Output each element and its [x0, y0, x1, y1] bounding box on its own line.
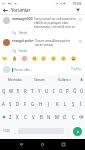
- button[interactable]: V: [29, 110, 37, 123]
- button[interactable]: F: [21, 97, 29, 110]
- button[interactable]: sparkle: [21, 55, 27, 61]
- button[interactable]: Back: [2, 7, 9, 14]
- staticText: A: [2, 101, 5, 107]
- staticText: X: [16, 114, 19, 120]
- button[interactable]: namazgiri000: [0, 15, 85, 35]
- button[interactable]: Like: [78, 39, 83, 44]
- button[interactable]: A: [0, 97, 7, 110]
- staticText: K: [56, 101, 59, 107]
- button[interactable]: M: [53, 110, 61, 123]
- button[interactable]: Ö: [61, 110, 69, 123]
- staticText: Ü: [80, 88, 84, 94]
- staticText: F: [24, 101, 27, 107]
- staticText: G: [31, 101, 35, 107]
- staticText: R: [24, 88, 27, 94]
- button[interactable]: Ş: [69, 97, 77, 110]
- staticText: Z: [9, 114, 12, 120]
- staticText: U: [45, 88, 49, 94]
- button[interactable]: X: [14, 110, 21, 123]
- button[interactable]: Share: [75, 7, 81, 13]
- button[interactable]: Home: [38, 140, 47, 149]
- button[interactable]: surprised: [50, 55, 56, 61]
- staticText: J: [48, 101, 50, 107]
- button[interactable]: B: [37, 110, 45, 123]
- button[interactable]: L: [61, 97, 69, 110]
- button[interactable]: ensegul.ar.tbn: [0, 35, 85, 53]
- staticText: namazgiri000: [12, 17, 33, 21]
- button[interactable]: Ü: [78, 84, 85, 97]
- staticText: ensegul.ar.tbn: [12, 39, 34, 43]
- staticText: Tutum ama Almanya'nın secim mesaj: [35, 39, 77, 47]
- button[interactable]: R: [22, 84, 29, 97]
- staticText: 19:08: [72, 1, 82, 6]
- staticText: L: [64, 101, 67, 107]
- staticText: I: [53, 88, 55, 94]
- staticText: M: [55, 114, 59, 120]
- button[interactable]: ,: [12, 123, 18, 139]
- button[interactable]: Q: [0, 84, 8, 97]
- button[interactable]: Back: [17, 140, 26, 149]
- staticText: Yorum ekle...: [14, 68, 33, 72]
- button[interactable]: S: [7, 97, 14, 110]
- button[interactable]: Like: [78, 17, 83, 22]
- staticText: T: [31, 88, 34, 94]
- staticText: V: [32, 114, 35, 120]
- button[interactable]: W: [8, 84, 15, 97]
- staticText: 2 g Yanıtla: [12, 31, 28, 35]
- button[interactable]: O: [57, 84, 64, 97]
- button[interactable]: E: [15, 84, 22, 97]
- button[interactable]: ?123: [0, 123, 12, 139]
- button[interactable]: Backspace: [77, 110, 85, 123]
- staticText: Y: [38, 88, 41, 94]
- button[interactable]: crying: [60, 55, 66, 61]
- staticText: N: [47, 114, 51, 120]
- staticText: Ç: [72, 114, 75, 120]
- staticText: 2 g Yanıtla: [12, 49, 28, 53]
- staticText: Paylaş: [71, 67, 81, 71]
- button[interactable]: Paylaş: [70, 67, 82, 71]
- staticText: İ: [80, 101, 82, 107]
- button[interactable]: J: [45, 97, 53, 110]
- button[interactable]: Z: [7, 110, 14, 123]
- button[interactable]: P: [64, 84, 71, 97]
- button[interactable]: K: [53, 97, 61, 110]
- button[interactable]: I: [50, 84, 57, 97]
- button[interactable]: Ç: [69, 110, 77, 123]
- button[interactable]: D: [14, 97, 21, 110]
- staticText: Ğ: [73, 88, 77, 94]
- button[interactable]: Kullanıcı: [52, 75, 77, 84]
- button[interactable]: C: [21, 110, 29, 123]
- button[interactable]: Y: [36, 84, 43, 97]
- button[interactable]: laughing: [70, 55, 76, 61]
- button[interactable]: Ğ: [71, 84, 78, 97]
- staticText: .: [67, 129, 68, 134]
- button[interactable]: Merhaba: [2, 75, 27, 84]
- staticText: O: [59, 88, 63, 94]
- button[interactable]: H: [37, 97, 45, 110]
- button[interactable]: N: [45, 110, 53, 123]
- staticText: E: [17, 88, 20, 94]
- staticText: ?123: [3, 129, 10, 133]
- button[interactable]: T: [29, 84, 36, 97]
- button[interactable]: Recents: [59, 140, 68, 149]
- button[interactable]: smile: [40, 55, 46, 61]
- button[interactable]: Tamam: [27, 75, 52, 84]
- button[interactable]: Voice input: [77, 75, 85, 84]
- staticText: H: [39, 101, 43, 107]
- staticText: D: [16, 101, 20, 107]
- button[interactable]: Yorum ekle...: [12, 66, 70, 73]
- button[interactable]: G: [29, 97, 37, 110]
- staticText: C: [24, 114, 27, 120]
- staticText: B: [40, 114, 43, 120]
- staticText: ,: [15, 129, 16, 134]
- button[interactable]: İ: [77, 97, 85, 110]
- button[interactable]: Shift: [0, 110, 7, 123]
- button[interactable]: Send: [73, 127, 82, 136]
- button[interactable]: fire: [11, 55, 17, 61]
- button[interactable]: heart eyes: [31, 55, 37, 61]
- button[interactable]: U: [43, 84, 50, 97]
- staticText: Merhaba: [8, 78, 22, 82]
- button[interactable]: raised hands: [1, 55, 7, 61]
